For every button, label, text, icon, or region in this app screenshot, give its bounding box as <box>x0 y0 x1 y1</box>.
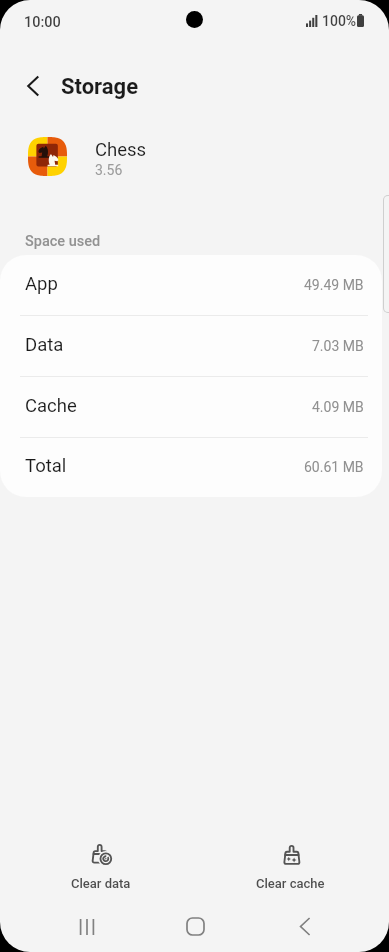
staticText: Clear data <box>71 876 131 891</box>
staticText: 10:00 <box>24 14 61 31</box>
staticText: Chess <box>95 139 147 161</box>
button[interactable]: Home <box>171 902 220 951</box>
staticText: Cache <box>25 395 77 417</box>
button[interactable]: Clear data <box>41 843 161 895</box>
staticText: 60.61 MB <box>304 459 364 475</box>
button[interactable]: Recent apps <box>62 902 111 951</box>
button[interactable]: Clear cache <box>230 843 350 895</box>
button[interactable]: Navigate up <box>9 62 57 110</box>
button[interactable]: Data <box>0 316 382 377</box>
staticText: Clear cache <box>256 876 325 891</box>
button[interactable]: Total <box>0 438 382 497</box>
staticText: 7.03 MB <box>312 338 364 354</box>
staticText: Data <box>25 334 64 356</box>
button[interactable]: Cache <box>0 377 382 438</box>
staticText: 49.49 MB <box>304 277 364 293</box>
staticText: Space used <box>25 233 101 250</box>
staticText: Total <box>25 455 67 477</box>
button[interactable]: Back <box>280 902 329 951</box>
staticText: 3.56 <box>95 162 123 178</box>
staticText: Storage <box>61 74 139 100</box>
staticText: 100% <box>322 13 357 29</box>
staticText: 4.09 MB <box>312 399 364 415</box>
button[interactable]: App <box>0 255 382 316</box>
staticText: App <box>25 273 58 295</box>
